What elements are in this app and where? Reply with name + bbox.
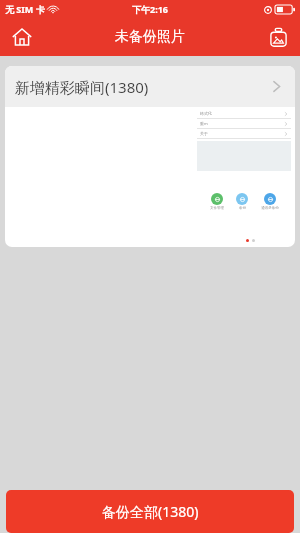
staticText: 格式化 [200,111,212,116]
staticText: 文件管理 [210,206,224,210]
button[interactable]: Backup album [256,18,300,56]
button[interactable]: Home [0,18,44,56]
staticText: 无 SIM 卡 [5,3,45,15]
staticText: 备份 [239,206,246,210]
button[interactable]: 备份全部(1380) [6,490,294,533]
button[interactable]: 新增精彩瞬间(1380) [5,66,295,107]
staticText: 下午2:16 [132,3,168,15]
staticText: 新增精彩瞬间(1380) [15,77,149,97]
staticText: 重m [200,121,208,126]
button[interactable]: 格式化 [197,109,291,210]
staticText: 关于 [200,131,208,136]
staticText: 未备份照片 [115,28,185,46]
staticText: 通讯录备份 [261,206,279,210]
staticText: 备份全部(1380) [102,502,199,521]
